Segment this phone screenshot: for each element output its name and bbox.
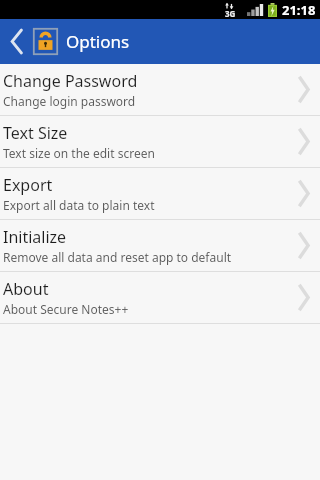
staticText: Export	[3, 174, 53, 196]
button[interactable]: Change Password	[0, 64, 320, 115]
staticText: Change Password	[3, 70, 138, 92]
button[interactable]: About	[0, 272, 320, 323]
staticText: Remove all data and reset app to default	[3, 249, 232, 265]
button[interactable]: Initialize	[0, 220, 320, 271]
staticText: Text Size	[3, 122, 68, 144]
button[interactable]: Text Size	[0, 116, 320, 167]
button[interactable]: Export	[0, 168, 320, 219]
staticText: Options	[66, 30, 130, 53]
staticText: About	[3, 278, 49, 300]
staticText: 21:18	[282, 1, 316, 19]
staticText: Initialize	[3, 226, 67, 248]
staticText: About Secure Notes++	[3, 301, 129, 317]
staticText: 3G	[225, 8, 236, 19]
staticText: Text size on the edit screen	[3, 145, 155, 161]
staticText: Export all data to plain text	[3, 197, 155, 213]
button[interactable]: Back	[0, 19, 33, 64]
staticText: Change login password	[3, 93, 136, 109]
